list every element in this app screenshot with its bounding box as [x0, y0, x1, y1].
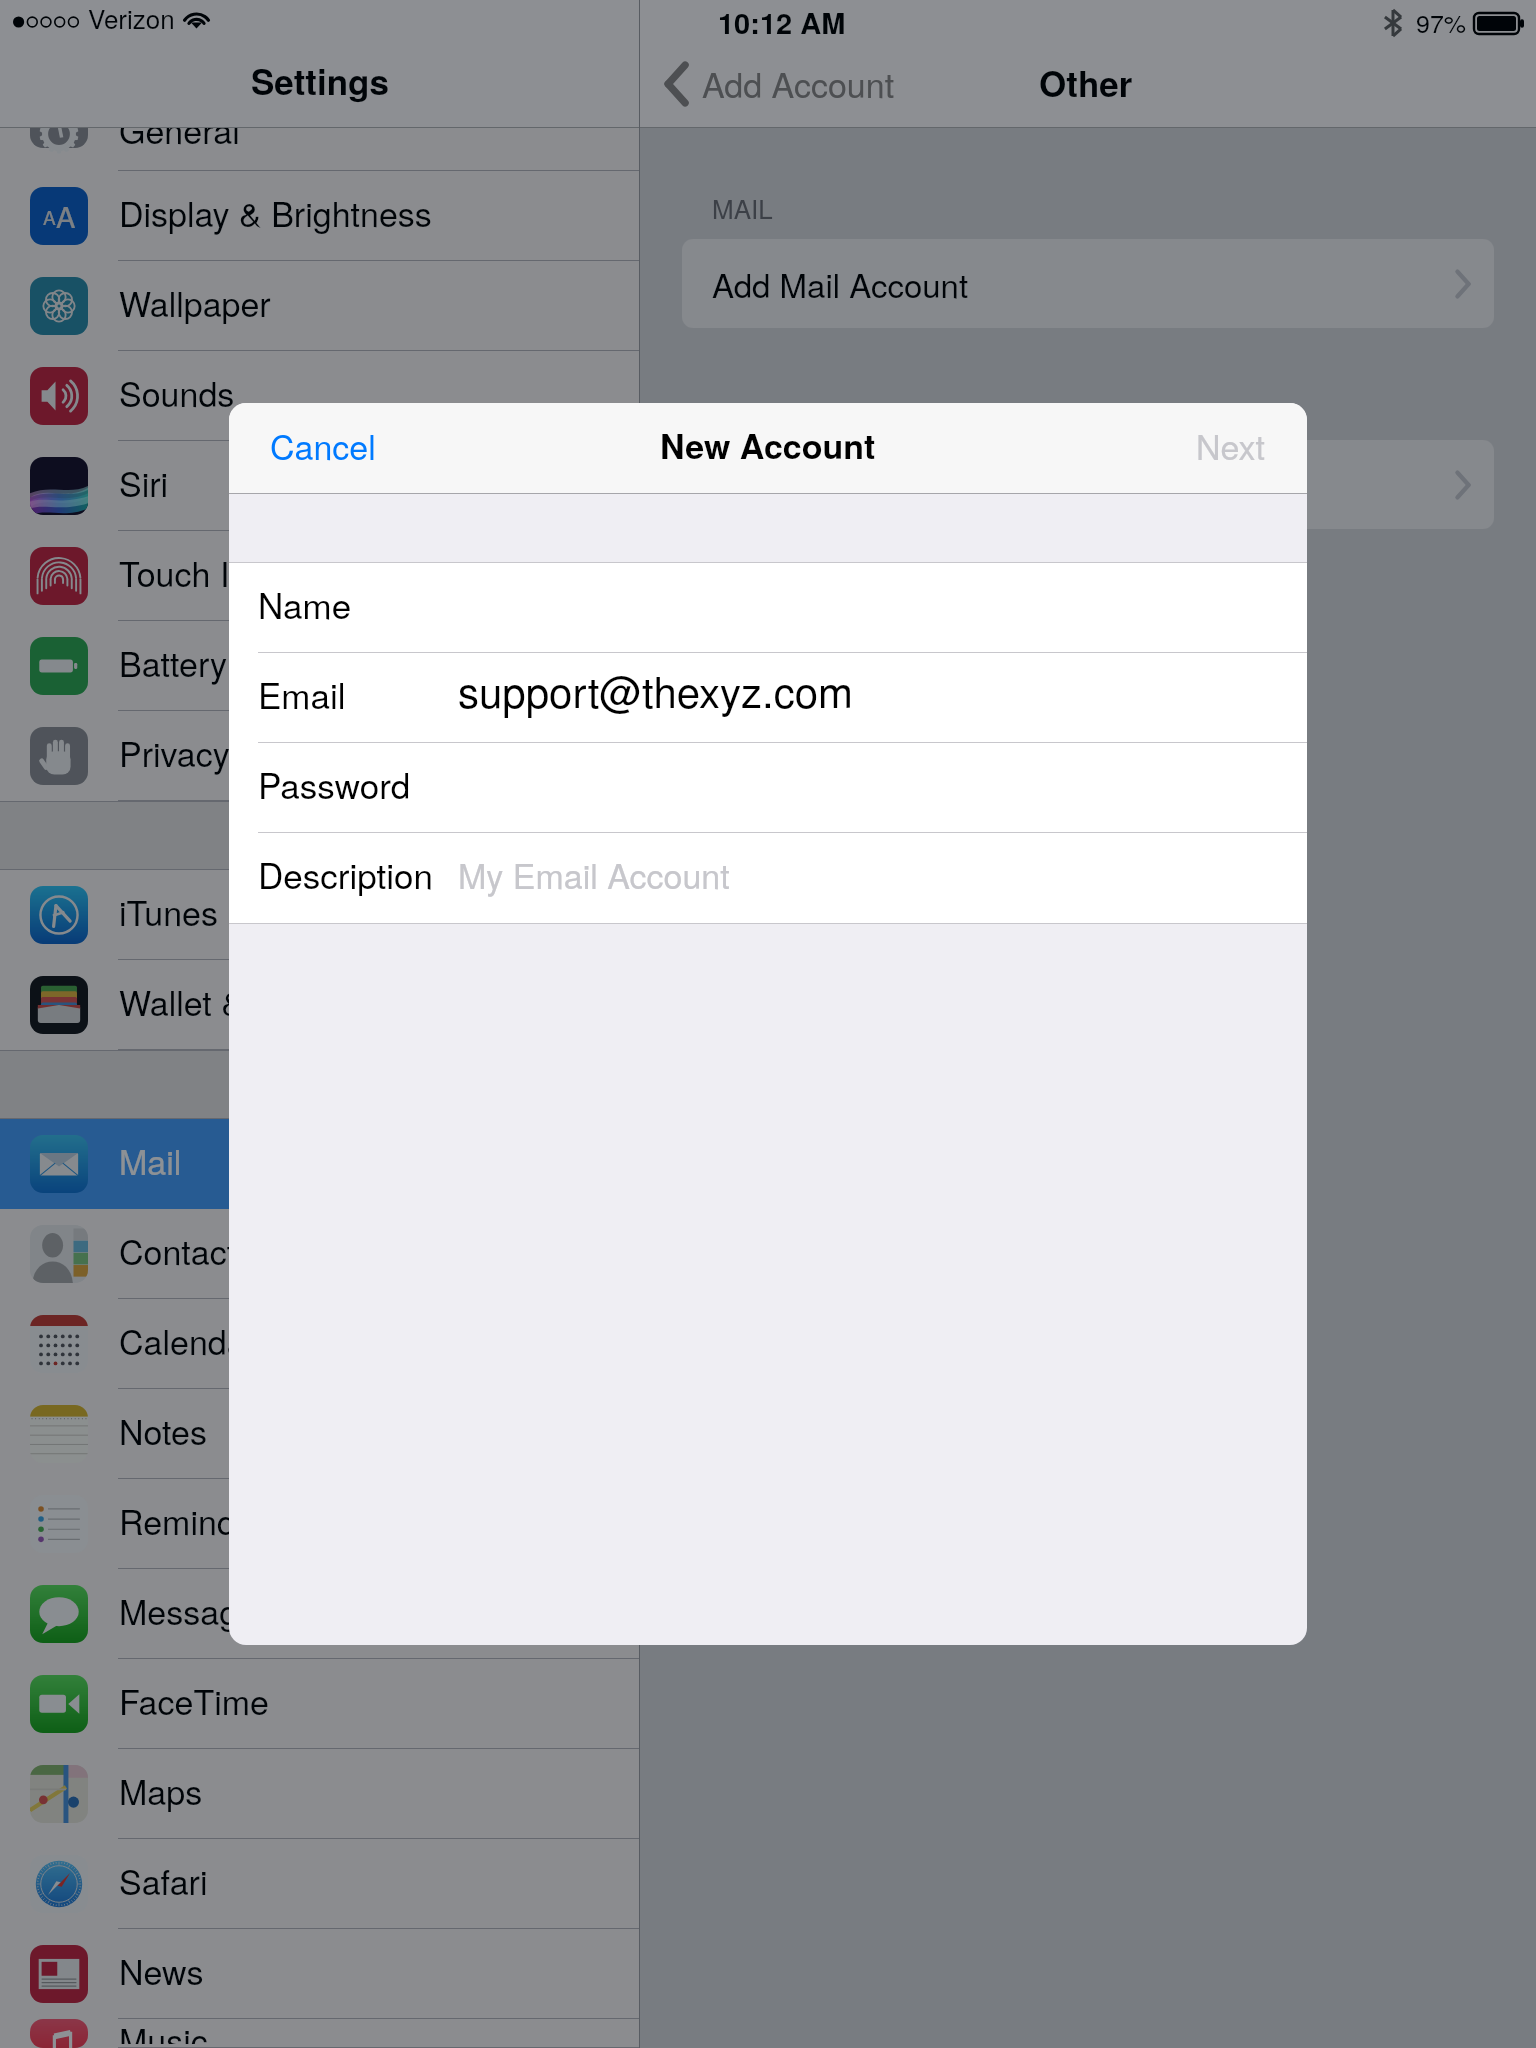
staticText: SERVERS [712, 398, 836, 435]
staticText: Wallpaper [119, 278, 271, 327]
staticText: Messages [119, 1586, 274, 1635]
staticText: iTunes & App Store [119, 887, 410, 936]
staticText: Siri [119, 458, 169, 507]
button[interactable]: Email [229, 653, 1307, 743]
staticText: MAIL [712, 189, 773, 226]
staticText: Password [258, 759, 411, 809]
staticText: Privacy [119, 728, 230, 777]
button[interactable]: News [0, 1929, 640, 2019]
button[interactable]: A [0, 171, 640, 261]
button[interactable]: Safari [0, 1839, 640, 1929]
button[interactable]: Reminders [0, 1479, 640, 1569]
staticText: Display & Brightness [119, 188, 432, 237]
staticText: FaceTime [119, 1676, 269, 1725]
staticText: Description [258, 849, 433, 899]
button[interactable]: Cancel [248, 409, 398, 482]
staticText: Reminders [119, 1496, 284, 1545]
staticText: Calendar [119, 1316, 257, 1365]
staticText: Settings [251, 56, 389, 106]
button[interactable]: Password [229, 743, 1307, 833]
button[interactable]: Wallet & Apple Pay [0, 960, 640, 1050]
button[interactable]: Name [229, 563, 1307, 653]
staticText: News [119, 1946, 204, 1995]
button[interactable]: Wallpaper [0, 261, 640, 351]
staticText: A [56, 195, 76, 237]
staticText: Music [119, 2015, 208, 2044]
staticText: A [43, 203, 56, 230]
button[interactable]: Add Mail Account [682, 239, 1494, 328]
staticText: Sounds [119, 368, 235, 417]
staticText: 97% [1416, 4, 1467, 40]
staticText: Safari [119, 1856, 208, 1905]
button[interactable]: Privacy [0, 711, 640, 801]
staticText: Add Mail Account [712, 260, 969, 307]
button[interactable]: Battery [0, 621, 640, 711]
staticText: Verizon [88, 0, 175, 36]
staticText: Other [1039, 58, 1133, 108]
staticText: Email [258, 669, 346, 719]
staticText: Touch ID & Passcode [119, 548, 444, 597]
button[interactable]: Music [0, 2019, 640, 2048]
button[interactable]: Touch ID & Passcode [0, 531, 640, 621]
button[interactable]: Mail [0, 1119, 640, 1209]
staticText: Add Account [702, 59, 895, 108]
button[interactable]: Siri [0, 441, 640, 531]
button[interactable]: iTunes & App Store [0, 870, 640, 960]
button[interactable]: Calendar [0, 1299, 640, 1389]
button[interactable]: Back to Add Account [654, 51, 901, 116]
staticText: Battery [119, 638, 228, 687]
staticText: Notes [119, 1406, 207, 1455]
staticText: Next [1196, 421, 1266, 470]
button[interactable]: Notes [0, 1389, 640, 1479]
button[interactable]: Sounds [0, 351, 640, 441]
staticText: Cancel [270, 421, 376, 470]
staticText: General [119, 105, 240, 148]
button[interactable]: Server settings [682, 440, 1494, 529]
button[interactable]: FaceTime [0, 1659, 640, 1749]
button[interactable]: Contacts [0, 1209, 640, 1299]
staticText: Contacts [119, 1226, 254, 1275]
staticText: Maps [119, 1766, 203, 1815]
button[interactable]: Messages [0, 1569, 640, 1659]
staticText: support@thexyz.com [458, 660, 854, 720]
staticText: New Account [660, 421, 876, 470]
staticText: Mail [119, 1136, 182, 1185]
button[interactable]: Next [1174, 409, 1288, 482]
staticText: Name [258, 579, 352, 629]
staticText: 10:12 AM [718, 1, 846, 43]
button[interactable]: Description [229, 833, 1307, 923]
staticText: My Email Account [458, 850, 730, 899]
button[interactable]: Maps [0, 1749, 640, 1839]
staticText: Wallet & Apple Pay [119, 977, 407, 1026]
